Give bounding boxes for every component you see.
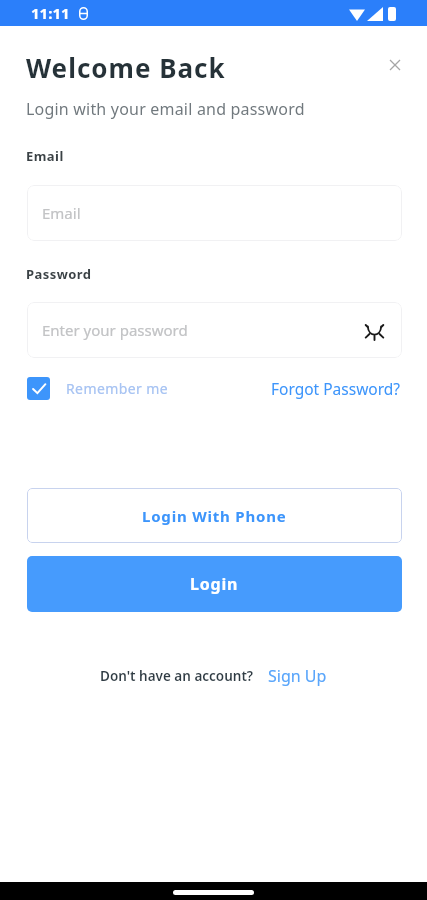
staticText: Forgot Password? [271, 378, 401, 399]
button[interactable]: Email [27, 185, 402, 241]
button[interactable]: Forgot Password? [271, 378, 401, 399]
staticText: Login [190, 573, 239, 595]
button[interactable]: Login [27, 556, 402, 612]
button[interactable]: Sign Up [268, 665, 327, 687]
staticText: Remember me [66, 379, 168, 398]
staticText: Sign Up [268, 665, 327, 687]
staticText: Email [42, 203, 81, 223]
staticText: Password [26, 265, 92, 283]
staticText: Welcome Back [26, 50, 226, 85]
staticText: Email [26, 147, 64, 165]
staticText: Login With Phone [142, 506, 287, 526]
staticText: Login with your email and password [26, 98, 305, 120]
button[interactable]: Remember me [27, 377, 168, 400]
button[interactable]: Close [381, 51, 409, 79]
button[interactable]: Enter your password [27, 302, 402, 358]
staticText: 11:11 [31, 3, 70, 23]
staticText: Enter your password [42, 320, 188, 340]
button[interactable]: Login With Phone [27, 488, 402, 543]
staticText: Don't have an account? [100, 667, 254, 685]
button[interactable]: Toggle password visibility [361, 319, 387, 345]
